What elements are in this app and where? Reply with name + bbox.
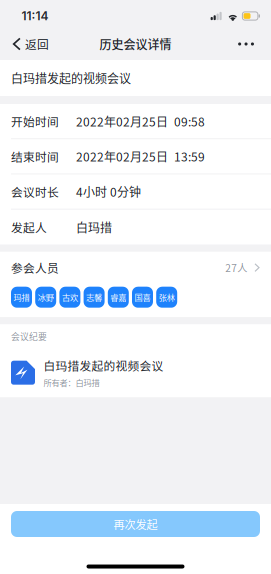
staticText: 白玛措发起的视频会议 [43, 357, 163, 374]
staticText: 白玛措发起的视频会议 [11, 69, 131, 87]
staticText: 2022年02月25日 13:59 [76, 148, 205, 165]
staticText: 志馨 [86, 291, 102, 303]
staticText: 国喜 [134, 291, 150, 303]
staticText: 历史会议详情 [99, 35, 171, 53]
staticText: 会议纪要 [11, 330, 47, 342]
staticText: 所有者：白玛措 [43, 376, 99, 388]
button[interactable]: 返回 [0, 28, 57, 60]
button[interactable]: 参会人员 [0, 252, 271, 284]
staticText: 古欢 [62, 291, 78, 303]
staticText: 白玛措 [76, 218, 112, 236]
staticText: 发起人 [11, 219, 47, 236]
staticText: 会议时长 [11, 183, 59, 200]
staticText: 玛措 [13, 291, 29, 303]
staticText: 2022年02月25日 09:58 [76, 112, 205, 130]
staticText: 睿嘉 [110, 291, 126, 303]
button[interactable]: 更多 [226, 28, 271, 60]
staticText: 返回 [25, 35, 49, 52]
staticText: 27人 [225, 260, 247, 275]
staticText: 冰野 [38, 291, 54, 303]
staticText: 参会人员 [11, 259, 59, 276]
staticText: 开始时间 [11, 113, 59, 130]
button[interactable]: 再次发起 [11, 511, 260, 537]
button[interactable]: 白玛措发起的视频会议 [0, 348, 271, 397]
staticText: 结束时间 [11, 148, 59, 165]
staticText: 4小时 0分钟 [76, 183, 141, 200]
staticText: 再次发起 [113, 516, 157, 532]
staticText: 11:14 [21, 9, 48, 23]
staticText: 张林 [159, 291, 175, 303]
